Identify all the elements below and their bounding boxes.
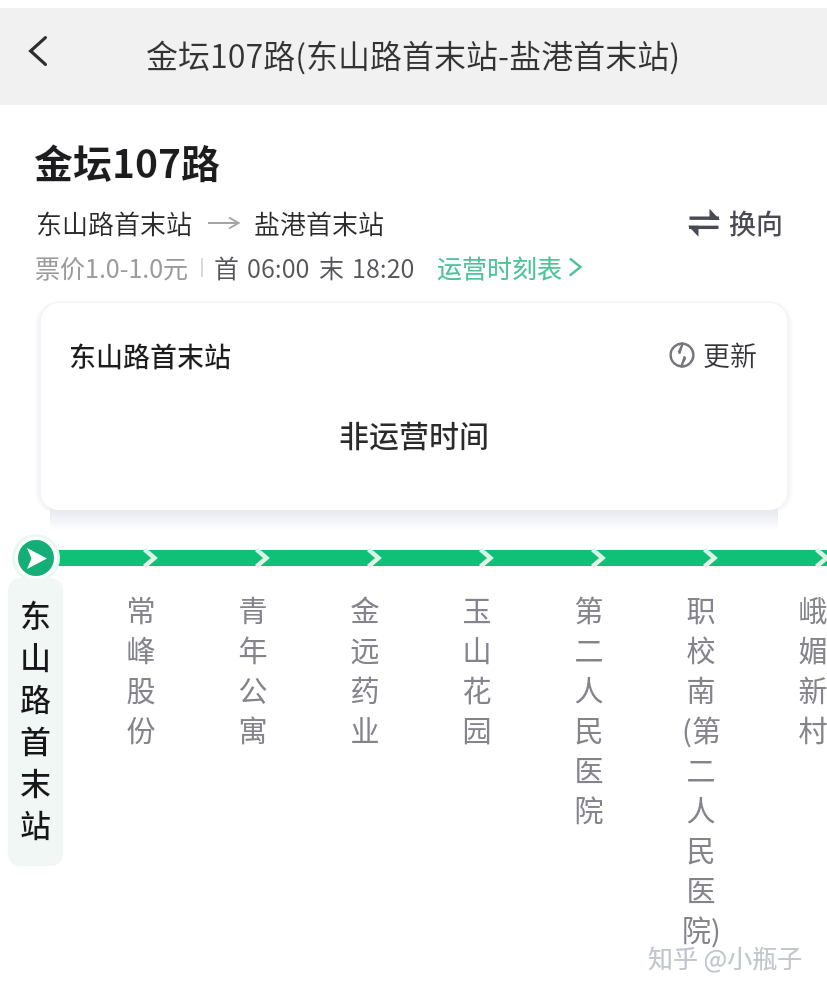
staticText: 业 [350,708,380,748]
button[interactable]: 更新 [669,335,757,374]
staticText: 药 [350,668,380,708]
button[interactable]: 换向 [688,203,783,242]
staticText: 更新 [703,335,757,374]
staticText: 村 [798,708,827,748]
staticText: 站 [20,801,51,843]
staticText: 远 [350,628,380,668]
staticText: 民 [686,828,716,868]
staticText: 园 [462,708,492,748]
staticText: 院 [574,788,604,828]
staticText: 换向 [729,203,783,242]
staticText: 运营时刻表 [437,249,563,285]
staticText: 末 [319,249,345,285]
staticText: 医 [686,868,716,908]
staticText: 金 [350,588,380,628]
button[interactable]: 职 [671,588,731,978]
staticText: 玉 [462,588,492,628]
staticText: (第 [682,708,721,748]
staticText: 首 [20,717,51,759]
staticText: 二 [686,748,716,788]
staticText: 票价1.0-1.0元 [35,249,189,285]
button[interactable]: 东山路首末站 [41,303,787,510]
button[interactable]: 东 [8,578,63,866]
staticText: 山 [20,633,51,675]
staticText: 寓 [238,708,268,748]
button[interactable]: 常 [111,588,171,978]
staticText: 青 [238,588,268,628]
staticText: 人 [574,668,604,708]
staticText: 院) [682,908,721,948]
staticText: 山 [462,628,492,668]
button[interactable]: 峨 [783,588,827,978]
staticText: 首 [214,249,240,285]
staticText: 东山路首末站 [36,204,193,242]
staticText: 末 [20,759,51,801]
staticText: 第 [574,588,604,628]
staticText: 06:00 [247,249,310,285]
staticText: 媚 [798,628,827,668]
staticText: 职 [686,588,716,628]
staticText: 18:20 [352,249,415,285]
staticText: 盐港首末站 [254,204,385,242]
staticText: 非运营时间 [339,412,489,455]
staticText: 东 [20,591,51,633]
button[interactable]: 玉 [447,588,507,978]
staticText: 民 [574,708,604,748]
staticText: 路 [20,675,51,717]
staticText: 公 [238,668,268,708]
staticText: 金坛107路(东山路首末站-盐港首末站) [146,31,681,77]
staticText: 峨 [798,588,827,628]
staticText: 东山路首末站 [69,336,231,375]
staticText: 份 [126,708,156,748]
staticText: 金坛107路 [34,133,221,189]
button[interactable]: 第 [559,588,619,978]
button[interactable]: 金 [335,588,395,978]
staticText: 新 [798,668,827,708]
staticText: 股 [126,668,156,708]
staticText: 年 [238,628,268,668]
button[interactable]: 运营时刻表 [437,249,582,285]
staticText: 南 [686,668,716,708]
button[interactable]: 青 [223,588,283,978]
staticText: 二 [574,628,604,668]
staticText: 医 [574,748,604,788]
staticText: 人 [686,788,716,828]
staticText: 峰 [126,628,156,668]
staticText: 花 [462,668,492,708]
button[interactable]: Back [8,8,68,94]
staticText: 常 [126,588,156,628]
staticText: 知乎 @小瓶子 [648,939,803,975]
staticText: 校 [686,628,716,668]
